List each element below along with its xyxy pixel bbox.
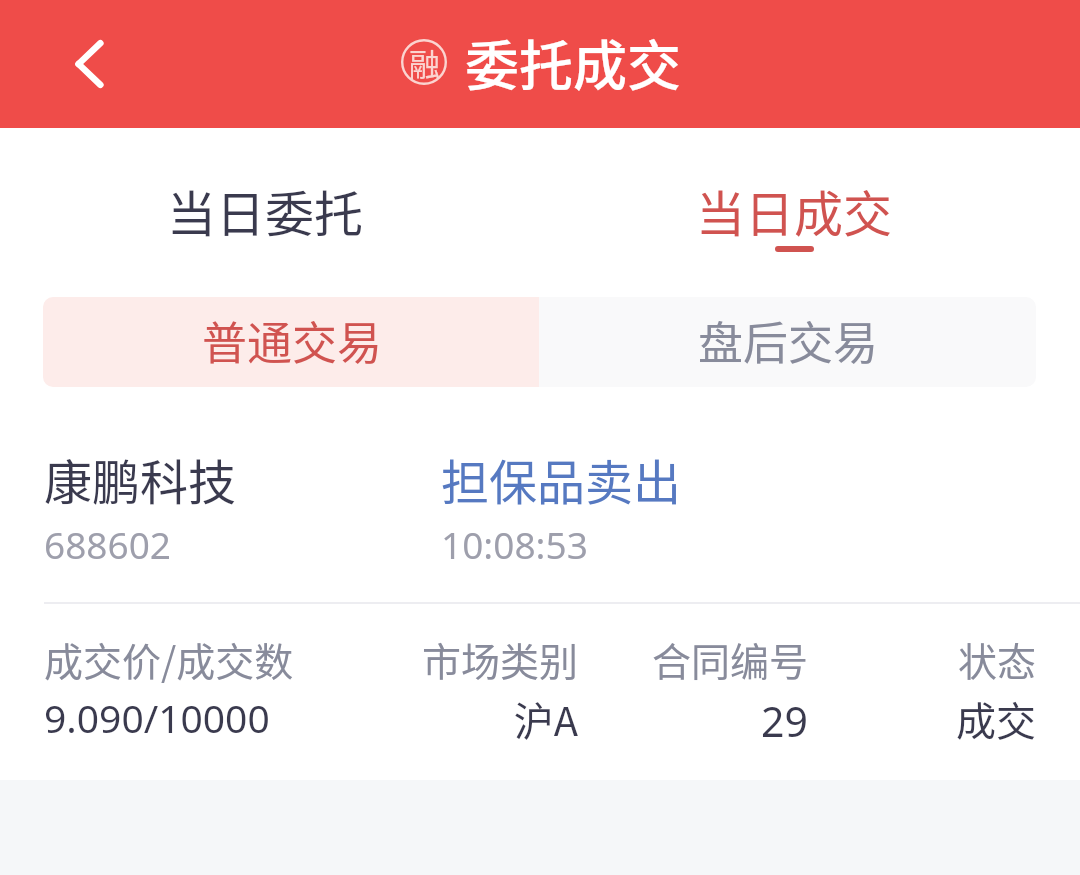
button[interactable]: 盘后交易 xyxy=(539,297,1036,387)
staticText: 担保品卖出 xyxy=(441,444,682,514)
staticText: 康鹏科技 xyxy=(44,444,237,514)
staticText: 委托成交 xyxy=(465,23,681,101)
staticText: 市场类别 xyxy=(376,631,578,687)
staticText: 成交 xyxy=(824,690,1036,748)
button[interactable]: 康鹏科技 xyxy=(0,400,1080,779)
staticText: 当日成交 xyxy=(529,175,1059,246)
staticText: 9.090/10000 xyxy=(44,691,384,744)
staticText: 29 xyxy=(594,693,808,749)
staticText: 状态 xyxy=(824,631,1036,687)
staticText: 融 xyxy=(409,40,440,85)
button[interactable]: Back xyxy=(46,20,134,108)
button[interactable]: 当日委托 xyxy=(0,128,530,298)
staticText: 成交价/成交数 xyxy=(44,631,384,687)
staticText: 普通交易 xyxy=(202,308,383,373)
staticText: 10:08:53 xyxy=(441,519,588,569)
staticText: 沪A xyxy=(376,690,578,748)
button[interactable]: 当日成交 xyxy=(529,128,1059,298)
button[interactable]: 普通交易 xyxy=(43,297,539,387)
staticText: 688602 xyxy=(44,519,171,569)
staticText: 合同编号 xyxy=(594,631,808,687)
staticText: 盘后交易 xyxy=(698,308,879,373)
staticText: 当日委托 xyxy=(0,175,530,246)
